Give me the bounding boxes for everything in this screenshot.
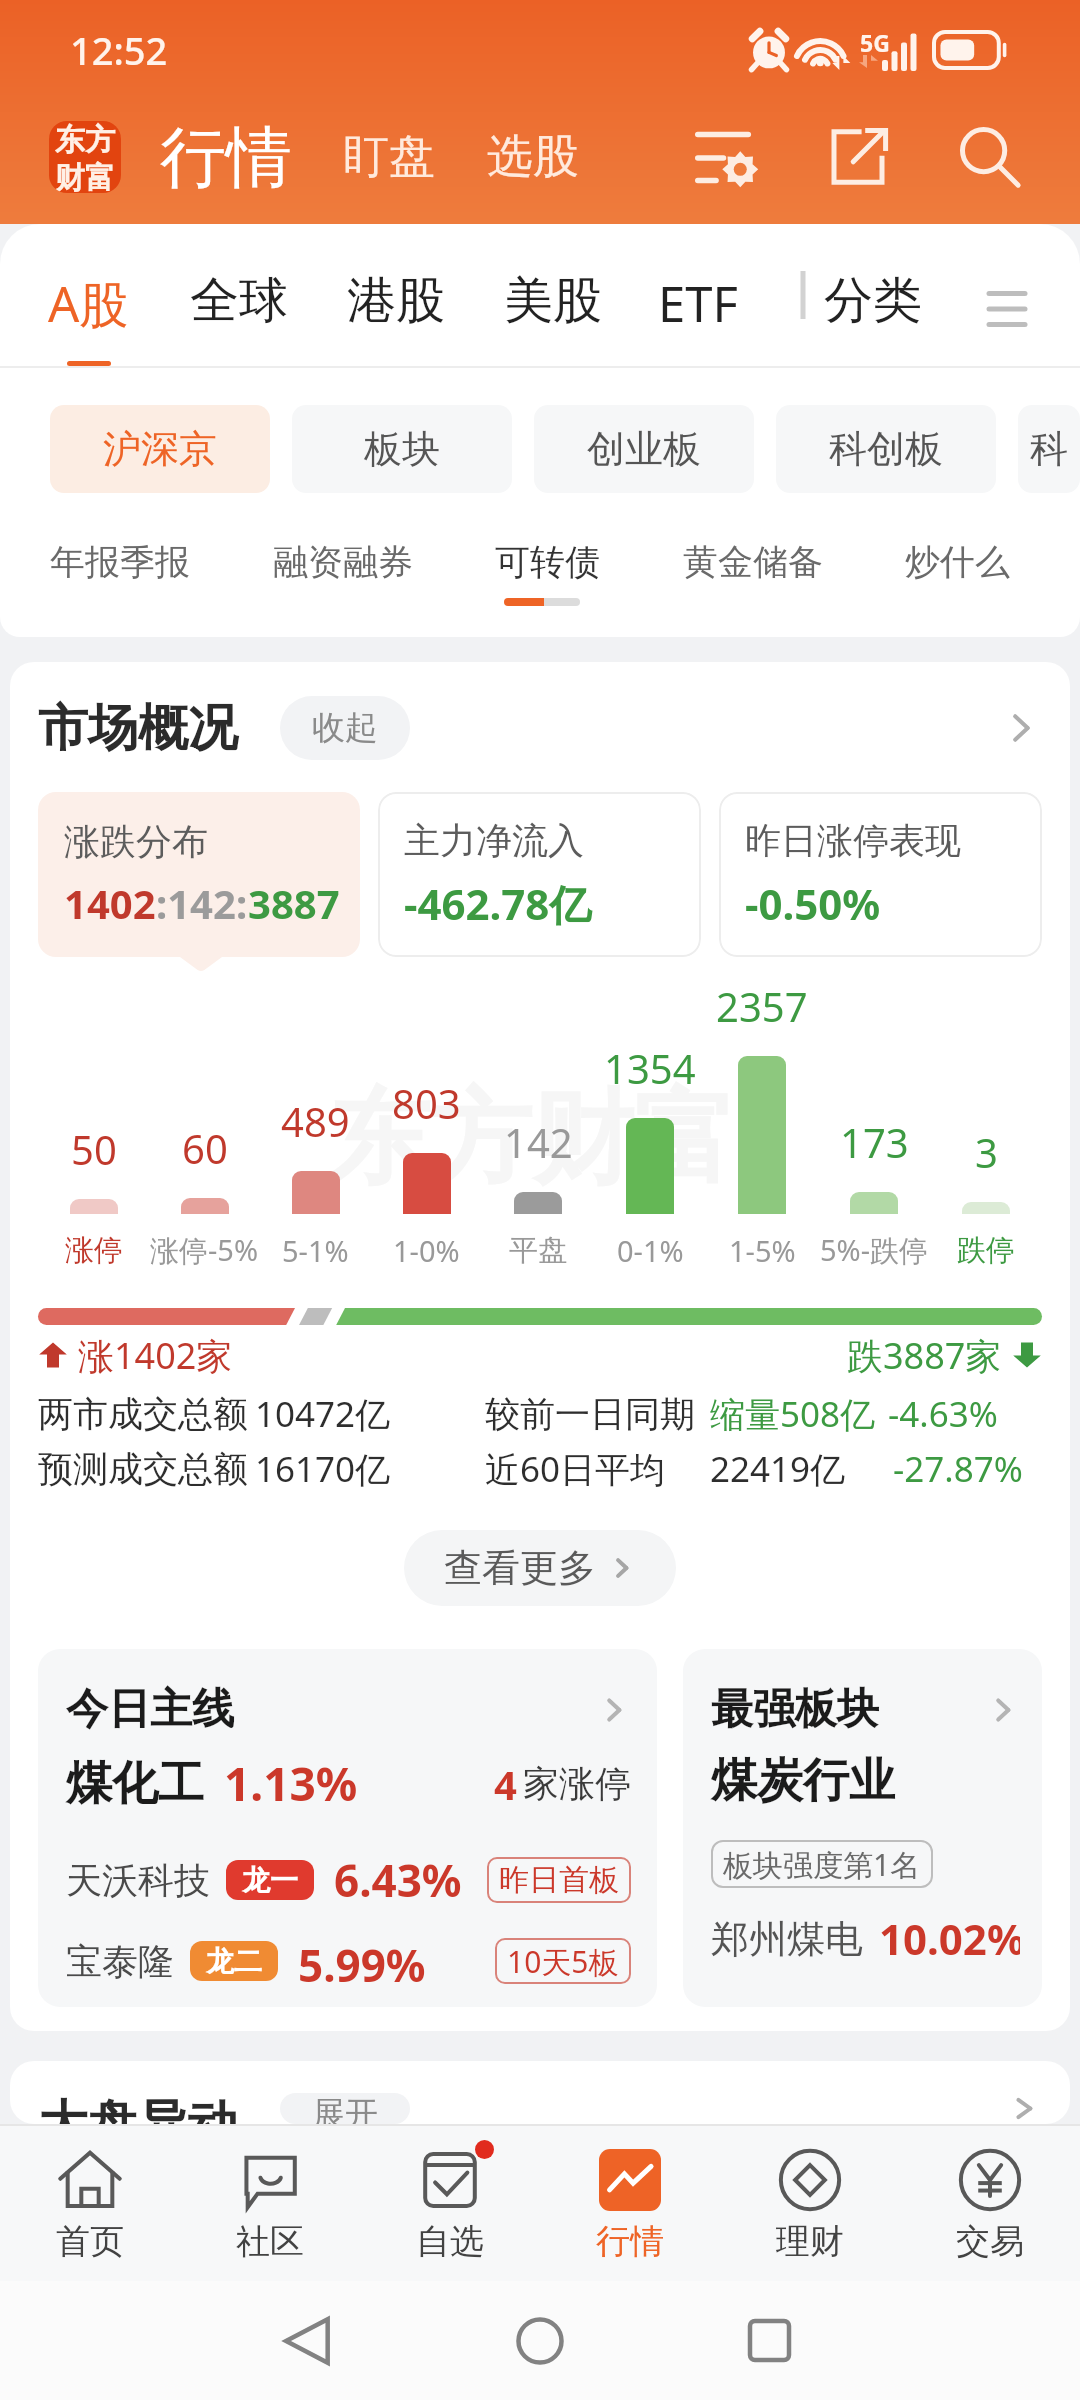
staticText: 科 [1030, 425, 1068, 473]
button[interactable]: 查看更多 [404, 1530, 676, 1606]
staticText: 年报季报 [50, 540, 190, 584]
staticText: 12:52 [70, 24, 168, 76]
staticText: 涨跌分布 [64, 819, 208, 864]
staticText: -27.87% [893, 1445, 1023, 1493]
staticText: 沪深京 [103, 425, 217, 473]
staticText: 近60日平均 [485, 1445, 666, 1493]
button[interactable]: 昨日涨停表现 [719, 792, 1042, 957]
staticText: 173 [840, 1115, 909, 1169]
button[interactable]: 今日主线 [38, 1649, 657, 2007]
button[interactable]: 涨跌分布 [38, 792, 360, 957]
staticText: 全球 [190, 270, 288, 332]
button[interactable]: 可转债 [495, 540, 600, 584]
staticText: 收起 [312, 707, 378, 749]
staticText: 5-1% [282, 1231, 349, 1270]
staticText: 展开 [312, 2093, 378, 2124]
button[interactable]: Back [264, 2281, 356, 2400]
staticText: 宝泰隆 [66, 1939, 174, 1984]
button[interactable]: 创业板 [534, 405, 754, 493]
staticText: 涨停-5% [150, 1230, 259, 1270]
staticText: :142: [156, 876, 248, 930]
staticText: 489 [281, 1094, 350, 1148]
button[interactable]: 年报季报 [50, 540, 190, 584]
button[interactable]: 分类 [824, 224, 922, 366]
staticText: 创业板 [587, 425, 701, 473]
staticText: 黄金储备 [683, 540, 823, 584]
button[interactable]: 主力净流入 [378, 792, 701, 957]
button[interactable]: 盯盘 [343, 128, 435, 186]
staticText: 缩量508亿 [710, 1390, 876, 1438]
button[interactable]: 科 [1018, 405, 1080, 493]
staticText: 市场概况 [38, 697, 238, 760]
staticText: 郑州煤电 [711, 1915, 863, 1963]
staticText: 5%-跌停 [820, 1230, 929, 1270]
staticText: 家涨停 [523, 1761, 631, 1806]
staticText: 1354 [604, 1041, 696, 1095]
button[interactable]: All categories [976, 238, 1038, 380]
staticText: 大盘异动 [38, 2093, 238, 2124]
button[interactable]: ETF [658, 224, 738, 366]
staticText: 东方财富 [328, 1075, 736, 1203]
button[interactable]: 交易 [900, 2126, 1080, 2281]
staticText: 预测成交总额 [38, 1447, 248, 1491]
staticText: 理财 [776, 2220, 844, 2263]
staticText: 炒什么 [905, 540, 1010, 584]
button[interactable]: 选股 [487, 128, 579, 186]
staticText: 1.13% [224, 1752, 358, 1815]
button[interactable]: 市场概况 [38, 680, 1042, 776]
button[interactable]: 沪深京 [50, 405, 270, 493]
staticText: 较前一日同期 [485, 1392, 695, 1436]
staticText: 社区 [236, 2220, 304, 2263]
button[interactable]: 首页 [0, 2126, 180, 2281]
button[interactable]: East Money logo [49, 121, 121, 193]
staticText: 昨日首板 [499, 1861, 619, 1899]
staticText: 803 [392, 1076, 461, 1130]
staticText: ETF [658, 270, 738, 337]
staticText: 1-0% [393, 1231, 460, 1270]
button[interactable]: 行情 [540, 2126, 720, 2281]
staticText: 行情 [596, 2220, 664, 2263]
staticText: 涨停 [65, 1232, 123, 1269]
staticText: 4 [494, 1757, 517, 1811]
button[interactable]: Recent apps [723, 2281, 815, 2400]
button[interactable]: Home [494, 2281, 586, 2400]
button[interactable]: Settings [681, 112, 771, 202]
staticText: 平盘 [509, 1232, 567, 1269]
button[interactable]: 理财 [720, 2126, 900, 2281]
button[interactable]: 融资融券 [273, 540, 413, 584]
button[interactable]: 社区 [180, 2126, 360, 2281]
staticText: 0-1% [617, 1231, 684, 1270]
staticText: 22419亿 [710, 1445, 846, 1493]
staticText: 财富 [55, 159, 115, 193]
button[interactable]: Share [813, 112, 903, 202]
button[interactable]: 科创板 [776, 405, 996, 493]
staticText: 交易 [956, 2220, 1024, 2263]
staticText: 1-5% [729, 1231, 796, 1270]
button[interactable]: 最强板块 [683, 1649, 1042, 2007]
button[interactable]: 黄金储备 [683, 540, 823, 584]
staticText: 可转债 [495, 540, 600, 584]
button[interactable]: Search [945, 112, 1035, 202]
staticText: -462.78亿 [404, 875, 592, 932]
button[interactable]: 美股 [504, 224, 602, 366]
staticText: 龙二 [206, 1944, 262, 1979]
staticText: 煤炭行业 [711, 1752, 895, 1810]
staticText: 昨日涨停表现 [745, 818, 961, 863]
button[interactable]: 港股 [347, 224, 445, 366]
staticText: 最强板块 [711, 1683, 879, 1736]
button[interactable]: 自选 [360, 2126, 540, 2281]
button[interactable]: 炒什么 [905, 540, 1010, 584]
button[interactable]: 全球 [190, 224, 288, 366]
staticText: 港股 [347, 270, 445, 332]
staticText: 自选 [416, 2220, 484, 2263]
staticText: 龙一 [242, 1863, 298, 1898]
button[interactable]: 板块 [292, 405, 512, 493]
staticText: 板块 [364, 425, 440, 473]
staticText: 两市成交总额 [38, 1392, 248, 1436]
staticText: 首页 [56, 2220, 124, 2263]
staticText: -0.50% [745, 875, 881, 932]
button[interactable]: A股 [48, 224, 129, 366]
staticText: 跌3887家 [847, 1331, 1002, 1379]
staticText: 主力净流入 [404, 818, 584, 863]
staticText: 美股 [504, 270, 602, 332]
